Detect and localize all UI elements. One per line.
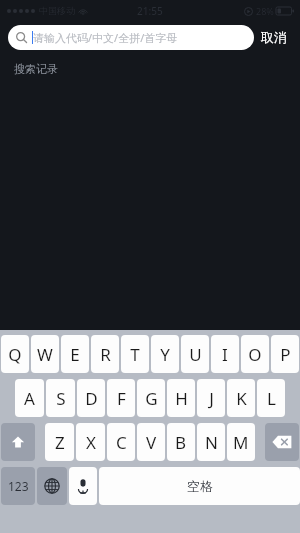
staticText: N (205, 431, 218, 454)
button[interactable]: Z (45, 423, 74, 461)
button[interactable]: Voice input (69, 467, 97, 505)
button[interactable]: F (107, 379, 135, 417)
button[interactable]: Shift (1, 423, 35, 461)
button[interactable]: O (241, 335, 269, 373)
button[interactable]: H (167, 379, 195, 417)
staticText: B (175, 431, 187, 454)
button[interactable]: C (107, 423, 135, 461)
button[interactable]: K (227, 379, 255, 417)
button[interactable]: D (77, 379, 105, 417)
staticText: A (24, 387, 35, 410)
button[interactable]: J (197, 379, 225, 417)
button[interactable]: V (137, 423, 165, 461)
button[interactable]: X (76, 423, 105, 461)
button[interactable]: M (227, 423, 255, 461)
button[interactable]: L (257, 379, 285, 417)
button[interactable]: Switch keyboard (37, 467, 67, 505)
button[interactable]: N (197, 423, 225, 461)
button[interactable]: W (31, 335, 59, 373)
button[interactable]: G (137, 379, 165, 417)
button[interactable]: 123 (1, 467, 35, 505)
staticText: V (146, 431, 157, 454)
staticText: G (145, 387, 158, 410)
button[interactable]: U (181, 335, 209, 373)
staticText: D (85, 387, 98, 410)
staticText: X (86, 431, 96, 454)
staticText: 搜索记录 (14, 62, 58, 76)
button[interactable]: I (211, 335, 239, 373)
staticText: T (130, 343, 140, 366)
staticText: 中国移动 (39, 5, 75, 16)
staticText: C (116, 431, 127, 454)
button[interactable]: Backspace (265, 423, 299, 461)
staticText: O (248, 343, 262, 366)
staticText: P (280, 343, 291, 366)
button[interactable]: B (167, 423, 195, 461)
staticText: K (236, 387, 247, 410)
staticText: 28% (256, 5, 274, 17)
staticText: F (117, 387, 126, 410)
staticText: Q (8, 343, 22, 366)
staticText: 取消 (261, 29, 287, 45)
staticText: Z (55, 431, 65, 454)
button[interactable]: E (61, 335, 89, 373)
staticText: W (37, 343, 53, 366)
staticText: J (209, 387, 214, 410)
staticText: I (222, 343, 228, 366)
staticText: L (267, 387, 276, 410)
staticText: H (175, 387, 188, 410)
button[interactable]: P (271, 335, 299, 373)
staticText: 请输入代码/中文/全拼/首字母 (33, 30, 178, 45)
staticText: S (56, 387, 66, 410)
button[interactable]: S (46, 379, 75, 417)
staticText: 空格 (187, 478, 213, 494)
button[interactable]: 请输入代码/中文/全拼/首字母 (8, 25, 254, 50)
button[interactable]: A (15, 379, 44, 417)
button[interactable]: Y (151, 335, 179, 373)
staticText: Y (160, 343, 170, 366)
staticText: E (70, 343, 80, 366)
button[interactable]: 空格 (99, 467, 300, 505)
staticText: M (233, 431, 249, 454)
staticText: 21:55 (137, 4, 163, 18)
staticText: R (100, 343, 111, 366)
staticText: U (189, 343, 202, 366)
button[interactable]: R (91, 335, 119, 373)
button[interactable]: 取消 (254, 25, 294, 49)
staticText: 123 (8, 478, 29, 494)
button[interactable]: Q (1, 335, 29, 373)
button[interactable]: T (121, 335, 149, 373)
